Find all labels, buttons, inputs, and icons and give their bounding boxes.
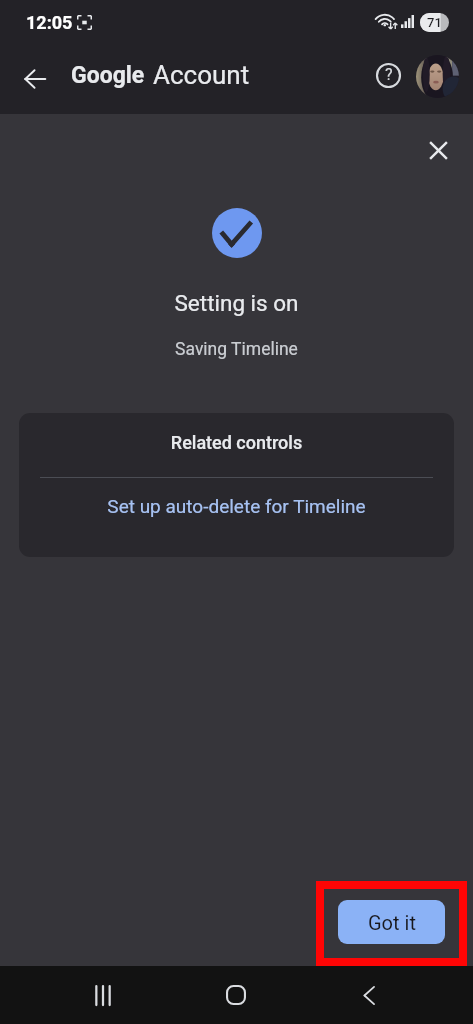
staticText: Set up auto-delete for Timeline xyxy=(19,495,454,517)
staticText: Related controls xyxy=(19,432,454,453)
button[interactable]: Home xyxy=(208,967,264,1023)
button[interactable]: Got it xyxy=(338,900,445,944)
button[interactable]: Account profile picture xyxy=(416,55,459,98)
button[interactable]: Back xyxy=(10,54,60,104)
button[interactable]: Help xyxy=(366,53,410,97)
button[interactable]: Recent apps xyxy=(75,967,131,1023)
staticText: Google xyxy=(71,62,145,89)
staticText: 12:05 xyxy=(26,12,73,33)
staticText: Account xyxy=(153,60,250,90)
button[interactable]: Close xyxy=(416,128,460,172)
staticText: 71 xyxy=(427,15,442,30)
button[interactable]: Back xyxy=(341,967,397,1023)
staticText: ? xyxy=(385,65,393,84)
staticText: Got it xyxy=(368,911,416,934)
button[interactable]: Set up auto-delete for Timeline xyxy=(19,478,454,557)
staticText: Saving Timeline xyxy=(0,339,473,360)
staticText: Setting is on xyxy=(0,290,473,316)
